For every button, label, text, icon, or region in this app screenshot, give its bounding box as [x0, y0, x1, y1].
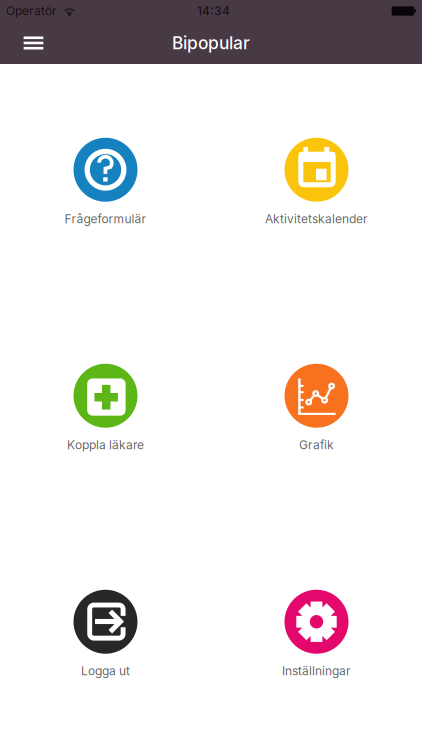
staticText: Inställningar	[282, 664, 351, 678]
button[interactable]: Menu	[0, 22, 67, 64]
staticText: Logga ut	[81, 664, 130, 678]
staticText: Aktivitetskalender	[265, 212, 368, 226]
button[interactable]: Logga ut	[0, 590, 211, 678]
staticText: 14:34	[197, 4, 230, 18]
staticText: Bipopular	[172, 32, 250, 53]
staticText: Frågeformulär	[64, 212, 146, 226]
staticText: Operatör	[6, 4, 57, 18]
button[interactable]: Koppla läkare	[0, 364, 211, 452]
button[interactable]: Frågeformulär	[0, 138, 211, 226]
button[interactable]: Aktivitetskalender	[211, 138, 422, 226]
button[interactable]: Grafik	[211, 364, 422, 452]
staticText: Grafik	[299, 438, 334, 452]
staticText: Koppla läkare	[67, 438, 144, 452]
button[interactable]: Inställningar	[211, 590, 422, 678]
